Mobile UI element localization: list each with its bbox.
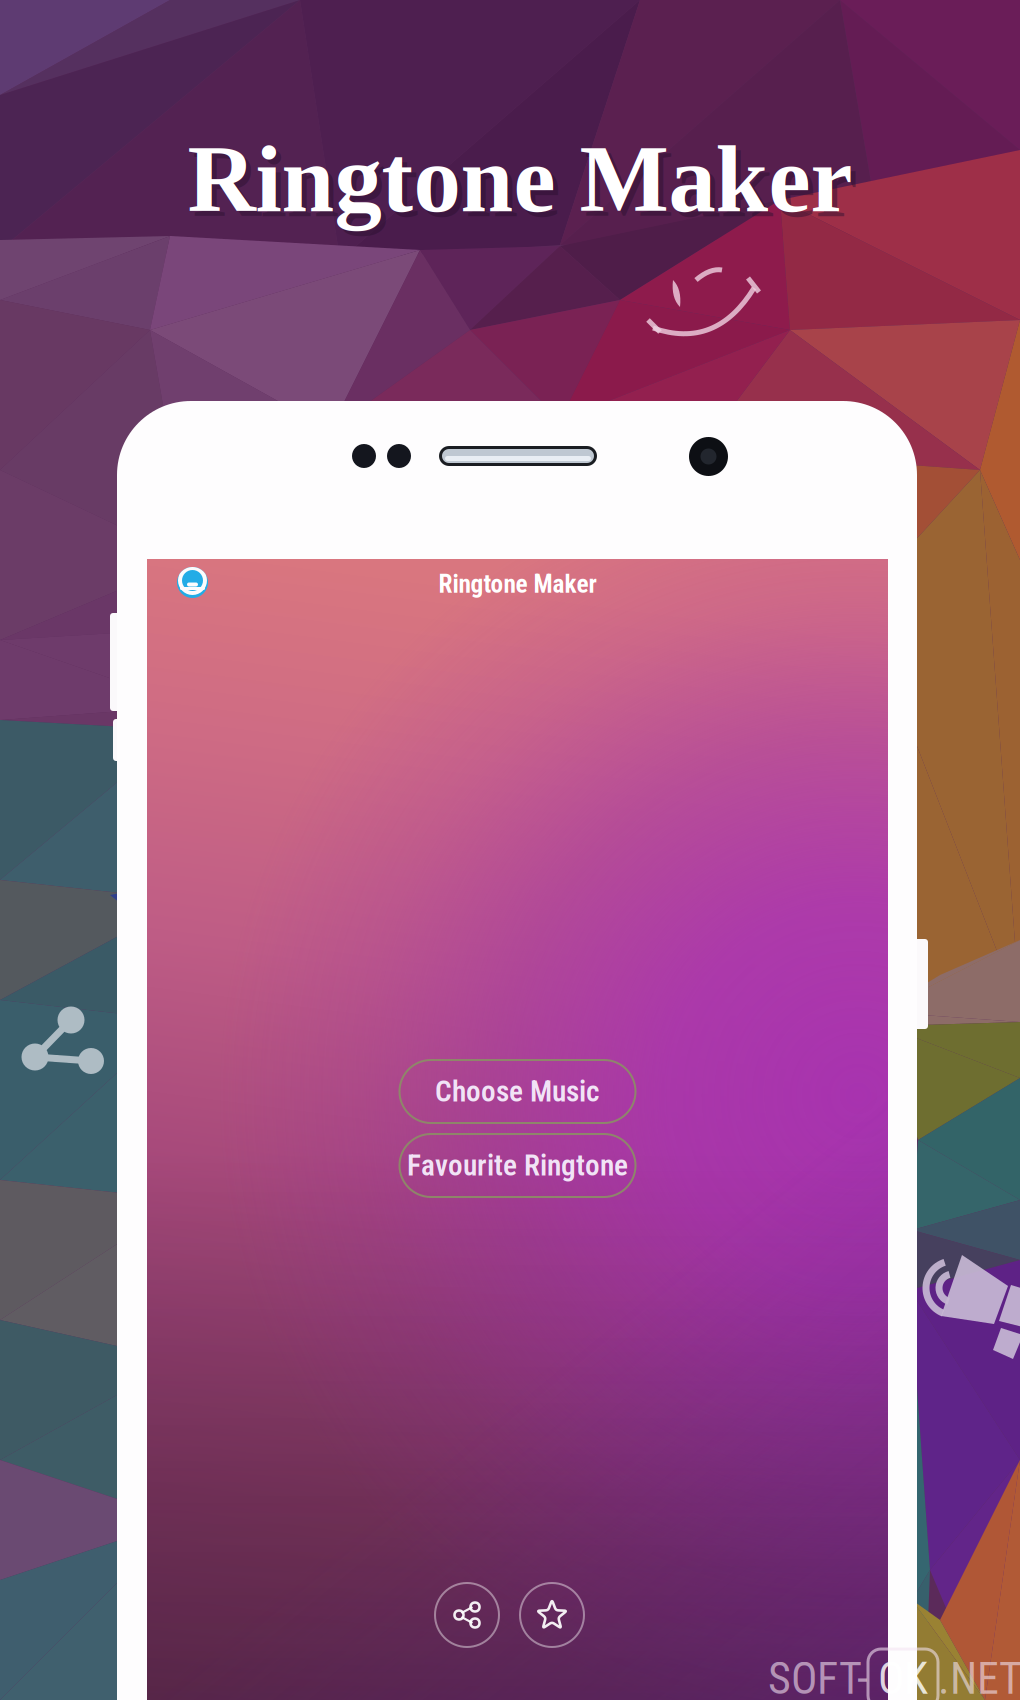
button[interactable]: Share [435,1583,499,1647]
staticText: Ringtone Maker [192,132,857,237]
button[interactable]: Favourite Ringtone [399,1134,635,1197]
staticText: .NET [938,1653,1020,1700]
staticText: Choose Music [435,1074,600,1109]
staticText: Favourite Ringtone [407,1148,628,1183]
staticText: Ringtone Maker [438,569,596,599]
staticText: Ringtone Maker [187,127,852,232]
staticText: OK [878,1653,928,1700]
button[interactable]: Favourite [520,1583,584,1647]
staticText: SOFT- [768,1653,868,1700]
button[interactable]: Choose Music [399,1060,635,1123]
